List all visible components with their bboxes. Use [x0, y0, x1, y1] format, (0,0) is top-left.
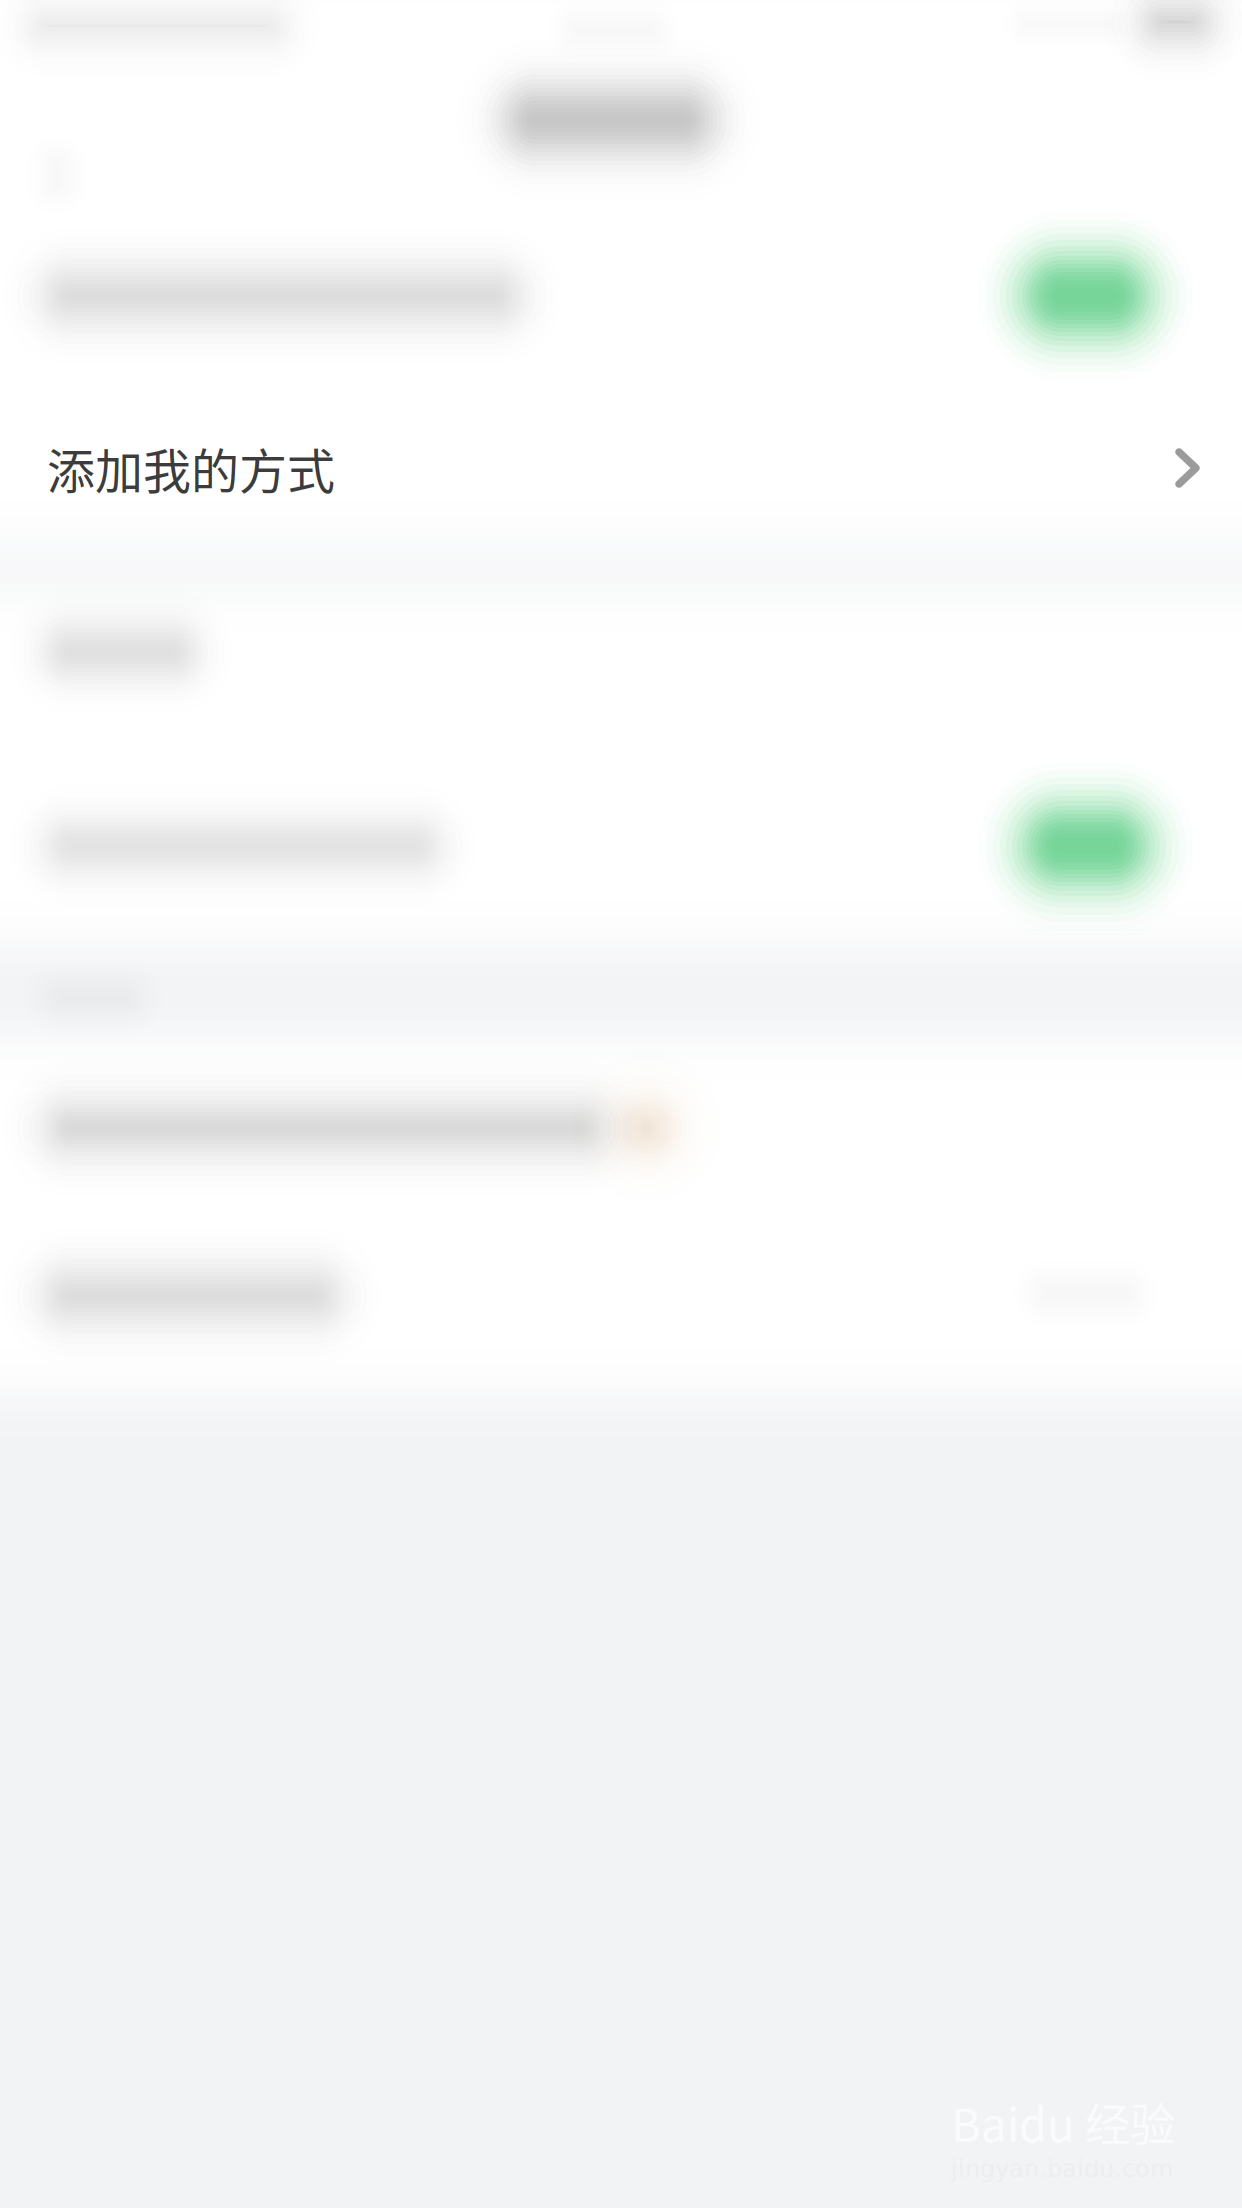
button[interactable]: 添加我的方式 — [0, 394, 1242, 542]
staticText: 添加我的方式 — [47, 433, 335, 503]
